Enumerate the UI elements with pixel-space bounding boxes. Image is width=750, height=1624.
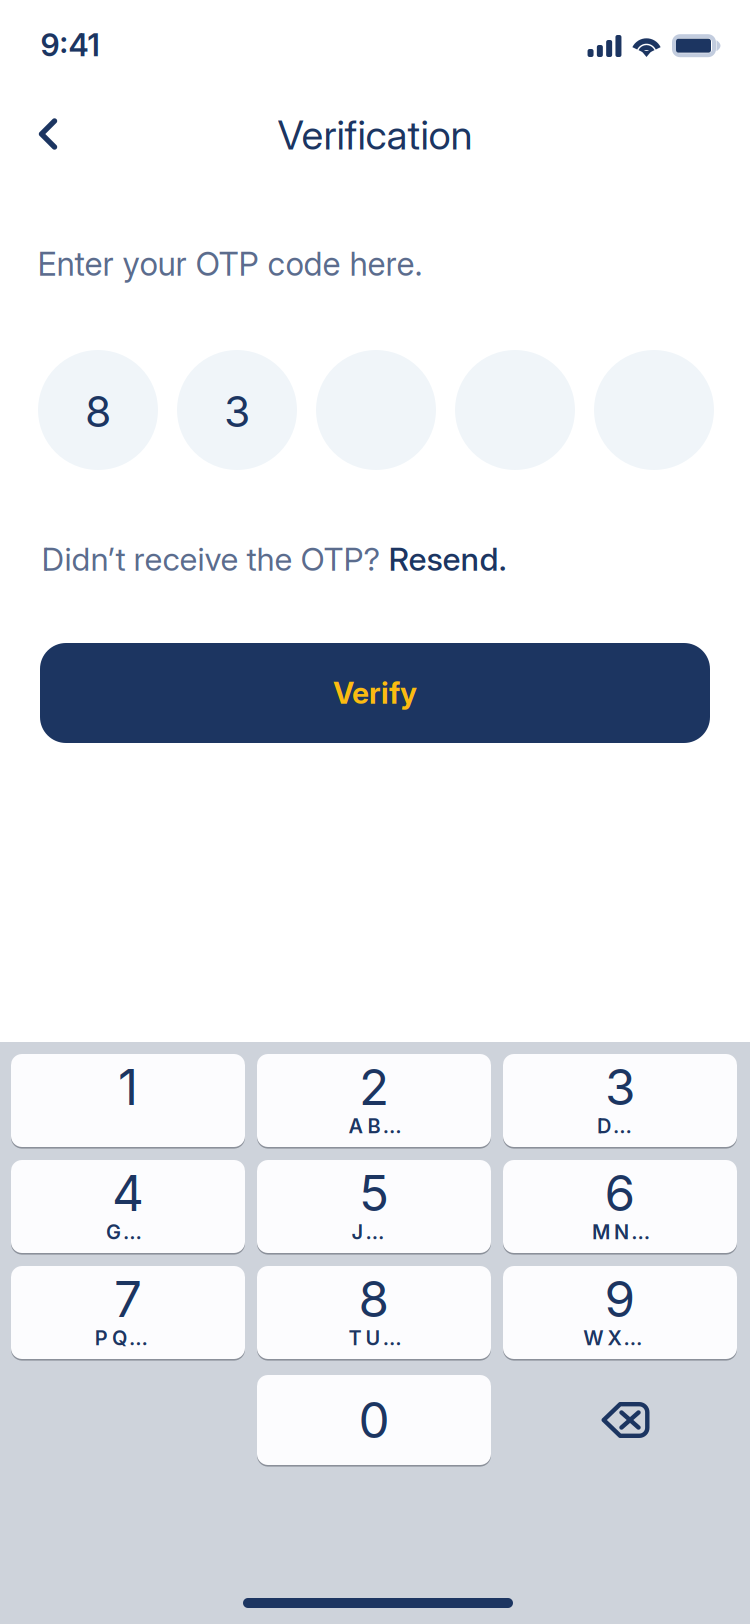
staticText: Enter your OTP code here. [37,244,422,284]
button[interactable]: 0 [257,1375,491,1465]
button[interactable]: Delete [503,1375,737,1465]
staticText: JKL [351,1220,397,1244]
staticText: TUV [348,1326,400,1350]
staticText: DEF [597,1114,643,1138]
staticText: MNO [592,1220,648,1244]
staticText: 9 [604,1269,635,1329]
staticText: 3 [224,386,250,437]
button[interactable]: 9 [503,1266,737,1359]
staticText: WXYZ [583,1326,657,1350]
staticText: PQRS [95,1326,161,1350]
staticText: 0 [358,1390,389,1450]
staticText: Resend. [388,540,506,578]
button[interactable]: 2 [257,1054,491,1147]
button[interactable]: Back [15,95,80,173]
button[interactable]: 6 [503,1160,737,1253]
button[interactable]: 7 [11,1266,245,1359]
staticText: ABC [348,1114,400,1138]
staticText: 8 [358,1269,389,1329]
staticText: 1 [118,1057,138,1117]
button[interactable]: 1 [11,1054,245,1147]
staticText: 9:41 [40,26,99,63]
staticText: 8 [85,386,111,437]
staticText: 3 [605,1057,635,1117]
button[interactable]: 8 [257,1266,491,1359]
staticText: 5 [359,1163,389,1223]
staticText: Verification [277,111,472,159]
button[interactable]: Verify [40,643,710,743]
staticText: 6 [604,1163,635,1223]
staticText: 7 [114,1269,142,1329]
staticText: GHI [106,1220,150,1244]
button[interactable]: Resend. [388,540,506,578]
button[interactable]: 3 [503,1054,737,1147]
staticText: Verify [333,675,417,711]
button[interactable]: 4 [11,1160,245,1253]
button[interactable]: 5 [257,1160,491,1253]
staticText: 2 [359,1057,389,1117]
staticText: 4 [112,1163,144,1223]
staticText: Didn’t receive the OTP? [41,540,388,578]
